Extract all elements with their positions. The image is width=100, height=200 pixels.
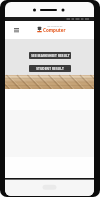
staticText: THE INSTITUTE OF bbox=[47, 25, 63, 27]
button[interactable]: SEE MARKSHEET RESULT bbox=[29, 52, 71, 59]
button[interactable]: STUDENT RESULT bbox=[29, 65, 71, 72]
staticText: STUDENT RESULT bbox=[36, 67, 64, 71]
button[interactable]: Menu bbox=[11, 25, 21, 35]
staticText: Computer bbox=[43, 27, 66, 33]
button[interactable]: THE INSTITUTE OF bbox=[37, 25, 66, 33]
staticText: SEE MARKSHEET RESULT bbox=[31, 54, 70, 58]
